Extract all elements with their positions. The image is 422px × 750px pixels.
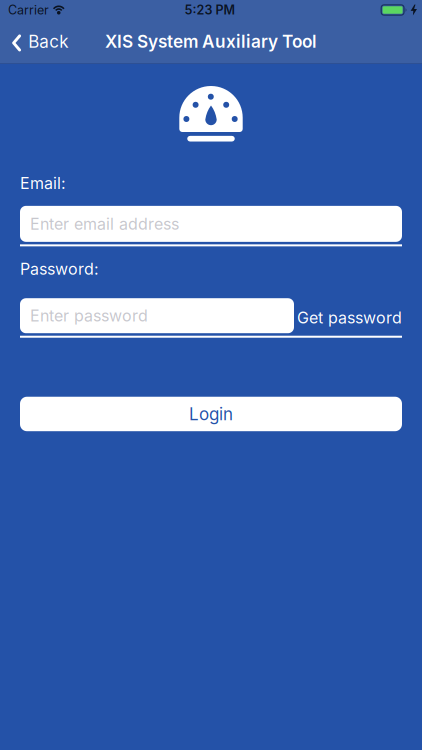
staticText: Carrier [8, 2, 49, 18]
staticText: Password: [20, 259, 99, 279]
staticText: Back [28, 31, 68, 52]
staticText: 5:23 PM [184, 2, 235, 18]
staticText: Get password [297, 308, 402, 327]
staticText: Enter password [30, 306, 148, 325]
staticText: XIS System Auxiliary Tool [105, 31, 317, 52]
staticText: Login [189, 404, 233, 424]
staticText: Email: [20, 173, 66, 193]
staticText: Enter email address [30, 214, 179, 234]
